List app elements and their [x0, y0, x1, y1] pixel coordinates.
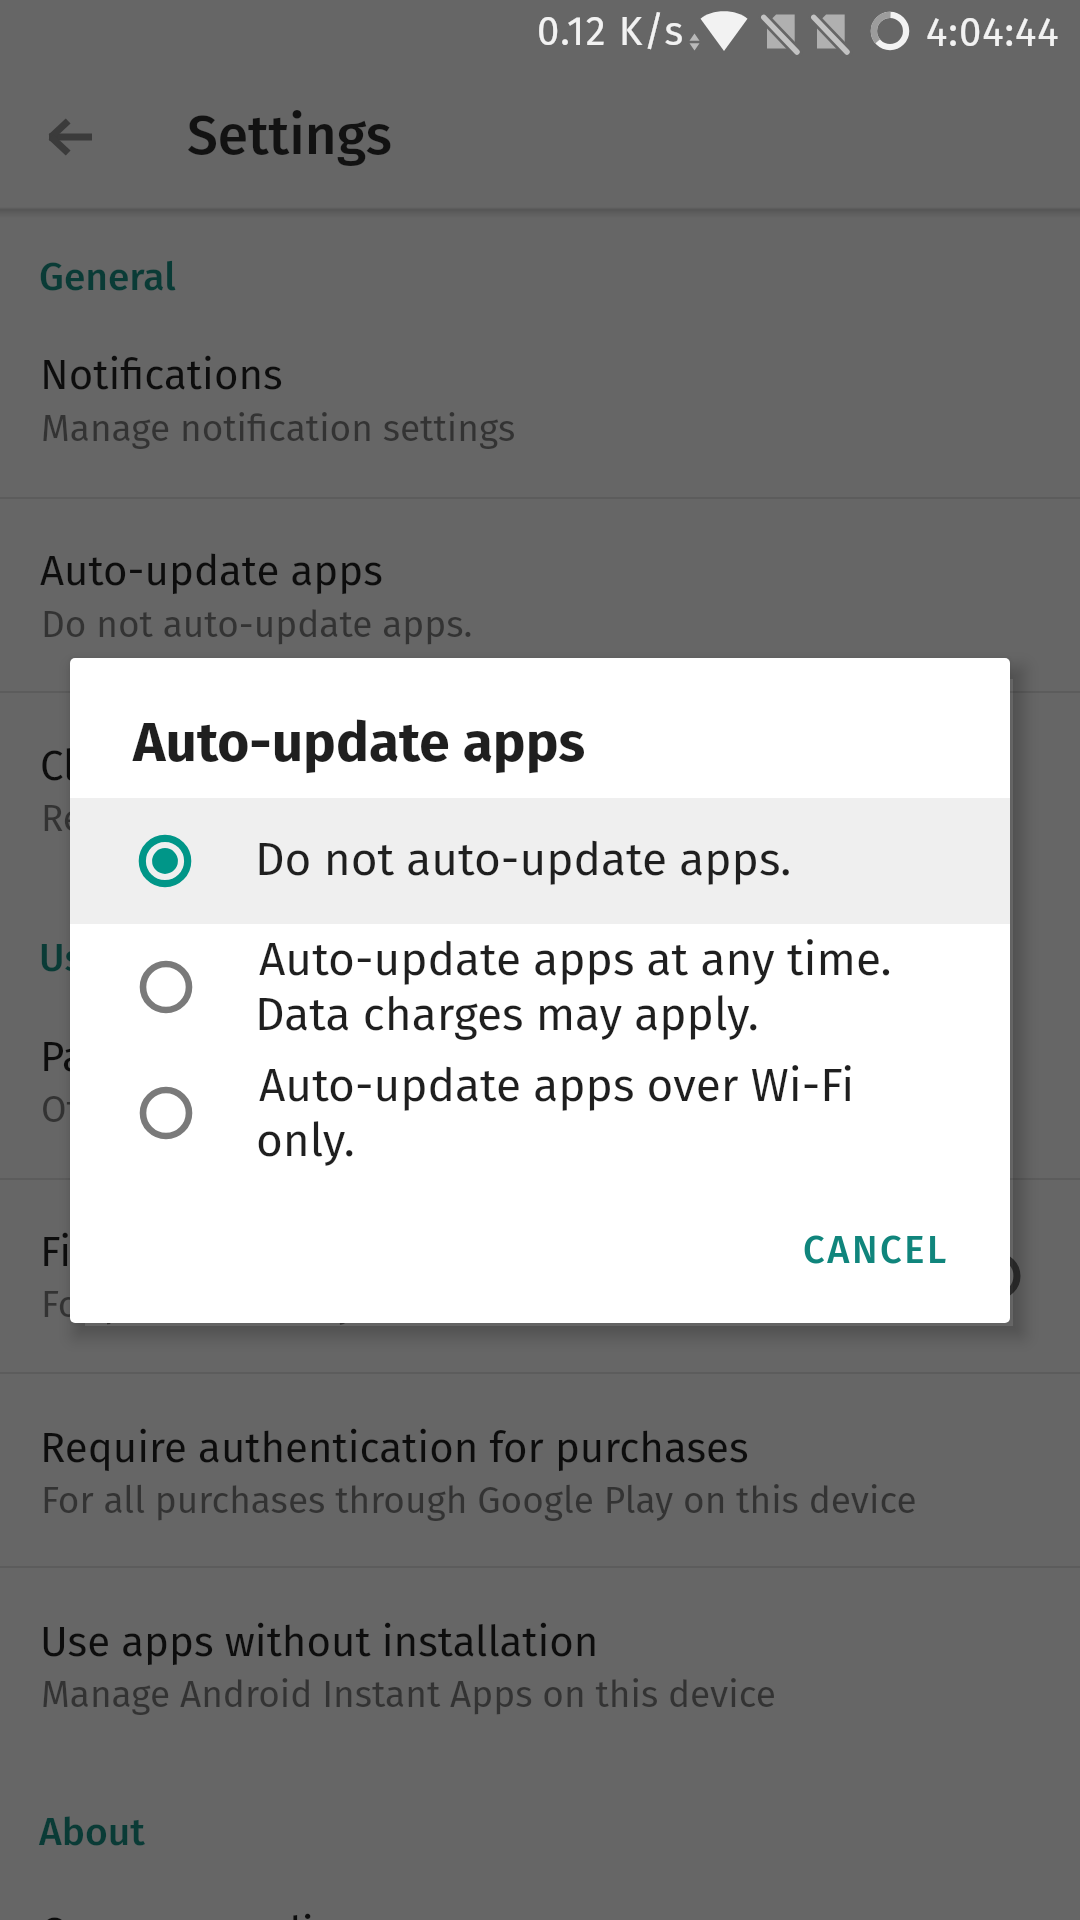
button[interactable]	[0, 1179, 1080, 1373]
staticText: About	[39, 1809, 145, 1856]
staticText: Do not auto-update apps.	[41, 602, 473, 646]
staticText: Manage Android Instant Apps on this devi…	[41, 1672, 776, 1716]
staticText: Notifications	[40, 350, 283, 400]
staticText: General	[39, 254, 176, 301]
staticText: Use apps without installation	[40, 1617, 599, 1667]
button[interactable]	[70, 924, 1010, 1050]
staticText: Auto-update apps over Wi-Fi	[259, 1058, 855, 1113]
staticText: For all purchases through Google Play on…	[41, 1478, 917, 1522]
staticText: Auto-update apps	[133, 710, 586, 776]
button[interactable]	[768, 1206, 982, 1298]
button[interactable]	[0, 1373, 1080, 1568]
button[interactable]	[0, 498, 1080, 691]
button[interactable]	[0, 1567, 1080, 1760]
staticText: CANCEL	[803, 1227, 949, 1273]
staticText: 0.12 K/s	[537, 8, 685, 56]
staticText: Auto-update apps at any time.	[259, 932, 892, 987]
staticText: only.	[256, 1113, 355, 1168]
staticText: Fingerprint	[40, 1227, 249, 1277]
button[interactable]	[70, 1049, 1010, 1175]
staticText: Parental controls	[40, 1032, 364, 1082]
staticText: User controls	[39, 935, 275, 982]
staticText: 4:04:44	[926, 9, 1060, 57]
staticText: Manage notification settings	[41, 406, 516, 450]
staticText: Remove the searches you have done	[41, 796, 653, 840]
button[interactable]: Back	[22, 88, 116, 182]
staticText: For purchases only	[41, 1282, 356, 1326]
staticText: Settings	[187, 103, 392, 169]
staticText: Auto-update apps	[40, 546, 383, 596]
staticText: Open source licenses	[40, 1908, 443, 1920]
staticText: Off	[41, 1087, 92, 1131]
button[interactable]	[0, 301, 1080, 498]
button[interactable]	[0, 692, 1080, 885]
staticText: Do not auto-update apps.	[255, 832, 792, 887]
staticText: Data charges may apply.	[255, 987, 759, 1042]
staticText: Require authentication for purchases	[40, 1423, 749, 1473]
staticText: Clear local search history	[40, 741, 518, 791]
button[interactable]	[70, 798, 1010, 924]
button[interactable]	[0, 984, 1080, 1180]
